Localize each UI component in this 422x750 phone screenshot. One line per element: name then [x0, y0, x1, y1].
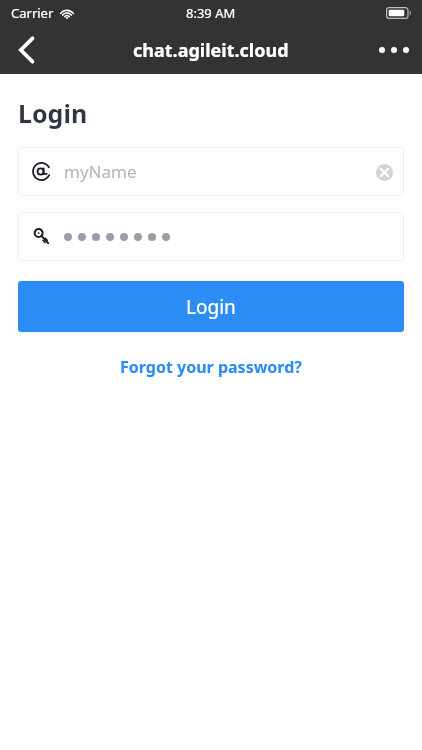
button[interactable]: myName — [18, 147, 404, 196]
staticText: Forgot your password? — [120, 356, 302, 378]
staticText: Carrier — [11, 4, 54, 22]
button[interactable]: Forgot your password? — [0, 353, 422, 381]
button[interactable]: Clear text — [367, 155, 401, 189]
button[interactable]: More options — [366, 26, 422, 74]
staticText: Login — [18, 96, 88, 130]
staticText: 8:39 AM — [186, 4, 236, 22]
staticText: chat.agileit.cloud — [133, 38, 289, 63]
button[interactable]: Login — [18, 281, 404, 332]
button[interactable]: Back — [0, 26, 52, 74]
staticText: Login — [186, 294, 236, 320]
button[interactable] — [18, 212, 404, 261]
staticText: myName — [64, 160, 137, 183]
